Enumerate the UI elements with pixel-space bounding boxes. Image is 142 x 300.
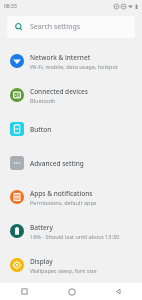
button[interactable]: Sound [0, 282, 142, 300]
button[interactable]: Home [48, 283, 95, 300]
button[interactable]: Connected devices [0, 78, 142, 112]
staticText: Volume, vibration, Do Not Disturb [30, 293, 118, 300]
staticText: Display [30, 257, 53, 266]
button[interactable]: Network & internet [0, 44, 142, 78]
staticText: Bluetooth [30, 97, 56, 104]
button[interactable]: Search settings [7, 16, 135, 38]
staticText: Wallpaper, sleep, font size [30, 267, 97, 274]
staticText: Battery [30, 223, 53, 232]
staticText: Connected devices [30, 87, 89, 96]
staticText: Network & internet [30, 53, 91, 62]
button[interactable]: Advanced setting [0, 146, 142, 180]
button[interactable]: Button [0, 112, 142, 146]
button[interactable]: Battery [0, 214, 142, 248]
staticText: Advanced setting [30, 159, 84, 168]
staticText: 16% - Should last until about 13:30 [30, 233, 120, 240]
button[interactable]: Recent apps [0, 283, 48, 300]
staticText: Button [30, 125, 52, 134]
staticText: 08:33 [4, 3, 17, 10]
button[interactable]: Apps & notifications [0, 180, 142, 214]
staticText: Permissions, default apps [30, 199, 97, 206]
staticText: Wi-Fi, mobile, data usage, hotspot [30, 63, 118, 70]
button[interactable]: Back [95, 283, 142, 300]
staticText: Apps & notifications [30, 189, 93, 198]
staticText: Search settings [30, 22, 81, 32]
button[interactable]: Display [0, 248, 142, 282]
